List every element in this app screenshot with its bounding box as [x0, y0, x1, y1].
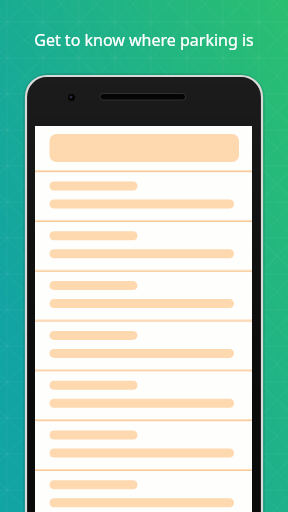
staticText: Get to know where parking is [34, 29, 254, 51]
